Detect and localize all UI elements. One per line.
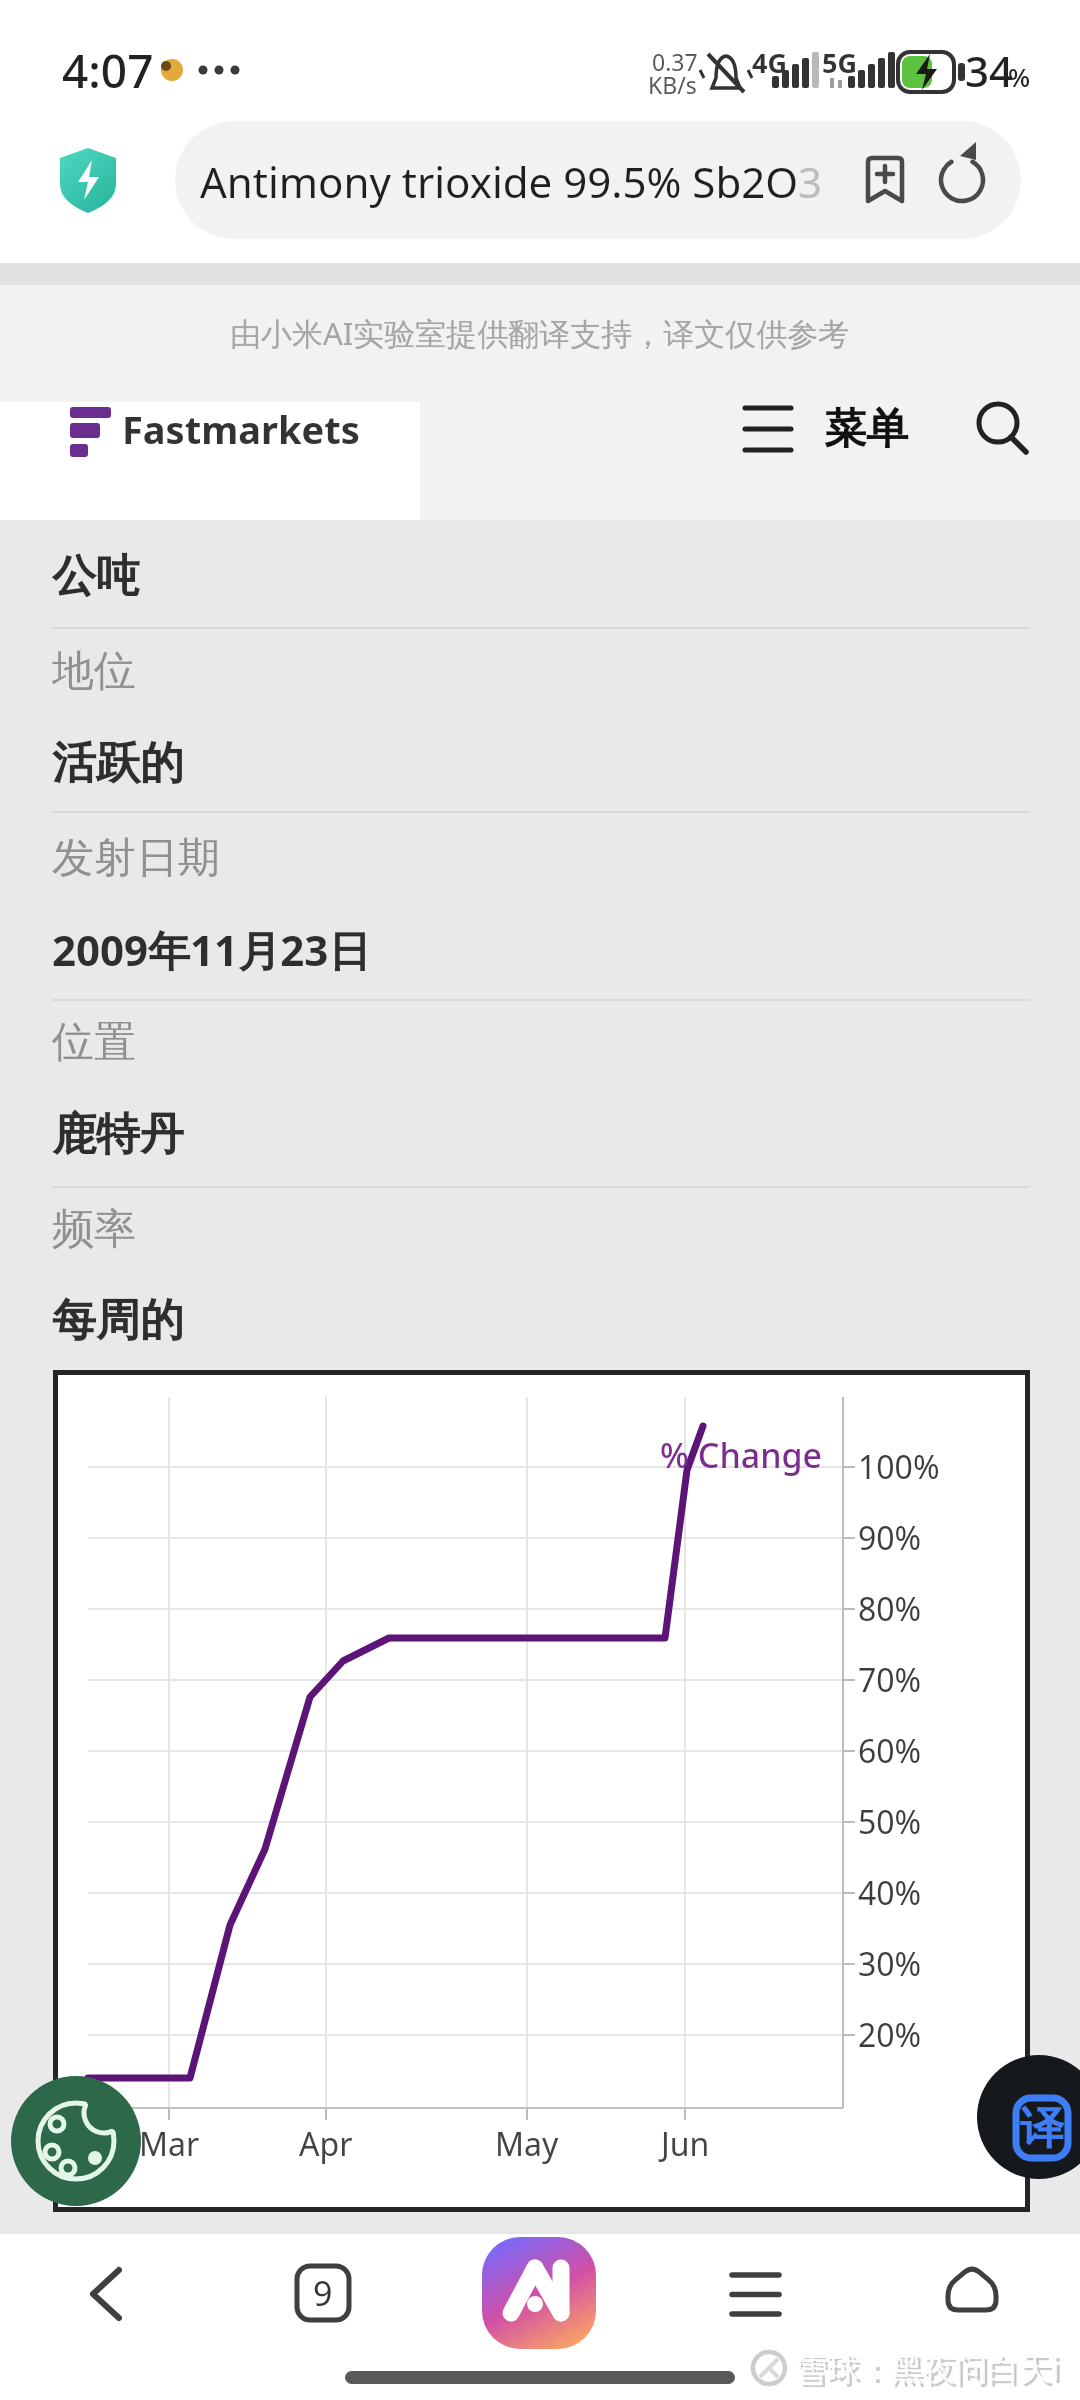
staticText: 位置 xyxy=(52,1016,136,1069)
staticText: KB/s xyxy=(648,69,697,100)
staticText: 译 xyxy=(1020,2101,1064,2156)
staticText: 70% xyxy=(858,1658,922,1702)
staticText: Mar xyxy=(139,2122,200,2166)
button[interactable] xyxy=(935,2255,1015,2335)
staticText: 公吨 xyxy=(52,549,140,604)
staticText: 0.37 xyxy=(652,46,698,77)
staticText: Antimony trioxide 99.5% Sb2O3 xyxy=(200,153,823,210)
staticText: 由小米AI实验室提供翻译支持，译文仅供参考 xyxy=(230,312,850,354)
staticText: 雪球：黑夜问白天i xyxy=(798,2349,1063,2393)
button[interactable]: 菜单 xyxy=(0,0,84,80)
button[interactable] xyxy=(845,140,925,220)
staticText: 菜单 xyxy=(824,403,908,456)
staticText: Fastmarkets xyxy=(122,403,360,455)
staticText: 4G xyxy=(752,44,787,81)
button[interactable] xyxy=(720,2255,800,2335)
staticText: 100% xyxy=(858,1445,940,1489)
staticText: 发射日期 xyxy=(52,832,220,885)
staticText: 9 xyxy=(313,2270,333,2316)
button[interactable] xyxy=(175,121,1021,239)
staticText: 90% xyxy=(858,1516,922,1560)
staticText: 地位 xyxy=(52,645,136,698)
staticText: 鹿特丹 xyxy=(52,1107,184,1162)
button[interactable] xyxy=(11,2076,141,2206)
staticText: 50% xyxy=(858,1800,922,1844)
staticText: 5G xyxy=(822,44,857,81)
staticText: 雪球：黑夜问白天i xyxy=(795,2346,1060,2390)
staticText: % xyxy=(1008,59,1031,94)
staticText: % Change xyxy=(660,1432,823,1478)
button[interactable] xyxy=(482,2237,596,2349)
staticText: Apr xyxy=(299,2122,353,2166)
staticText: 2009年11月23日 xyxy=(52,921,371,978)
staticText: 34 xyxy=(965,42,1014,99)
staticText: 频率 xyxy=(52,1203,136,1256)
button[interactable] xyxy=(285,2255,365,2335)
staticText: 活跃的 xyxy=(52,736,184,791)
button[interactable] xyxy=(75,2255,155,2335)
staticText: 60% xyxy=(858,1729,922,1773)
staticText: May xyxy=(495,2122,559,2166)
staticText: 80% xyxy=(858,1587,922,1631)
staticText: 4:07 xyxy=(62,39,154,102)
button[interactable] xyxy=(975,140,1055,220)
staticText: 每周的 xyxy=(52,1293,184,1348)
staticText: 30% xyxy=(858,1942,922,1986)
staticText: 40% xyxy=(858,1871,922,1915)
button[interactable] xyxy=(977,2055,1080,2179)
staticText: 20% xyxy=(858,2013,922,2057)
staticText: Jun xyxy=(661,2122,710,2166)
